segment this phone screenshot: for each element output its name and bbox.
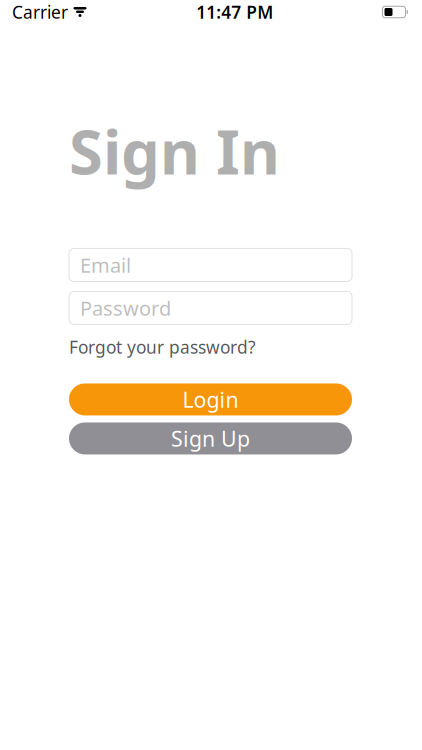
staticText: Email (80, 252, 131, 278)
button[interactable]: Sign Up (69, 422, 352, 454)
staticText: Login (182, 385, 238, 414)
button[interactable]: Login (69, 383, 352, 415)
staticText: 11:47 PM (196, 0, 273, 23)
staticText: Forgot your password? (69, 335, 256, 358)
staticText: Sign In (69, 110, 280, 191)
staticText: Password (80, 295, 171, 321)
staticText: Carrier (12, 0, 68, 23)
staticText: Sign Up (171, 424, 250, 453)
button[interactable]: Forgot your password? (69, 333, 256, 360)
